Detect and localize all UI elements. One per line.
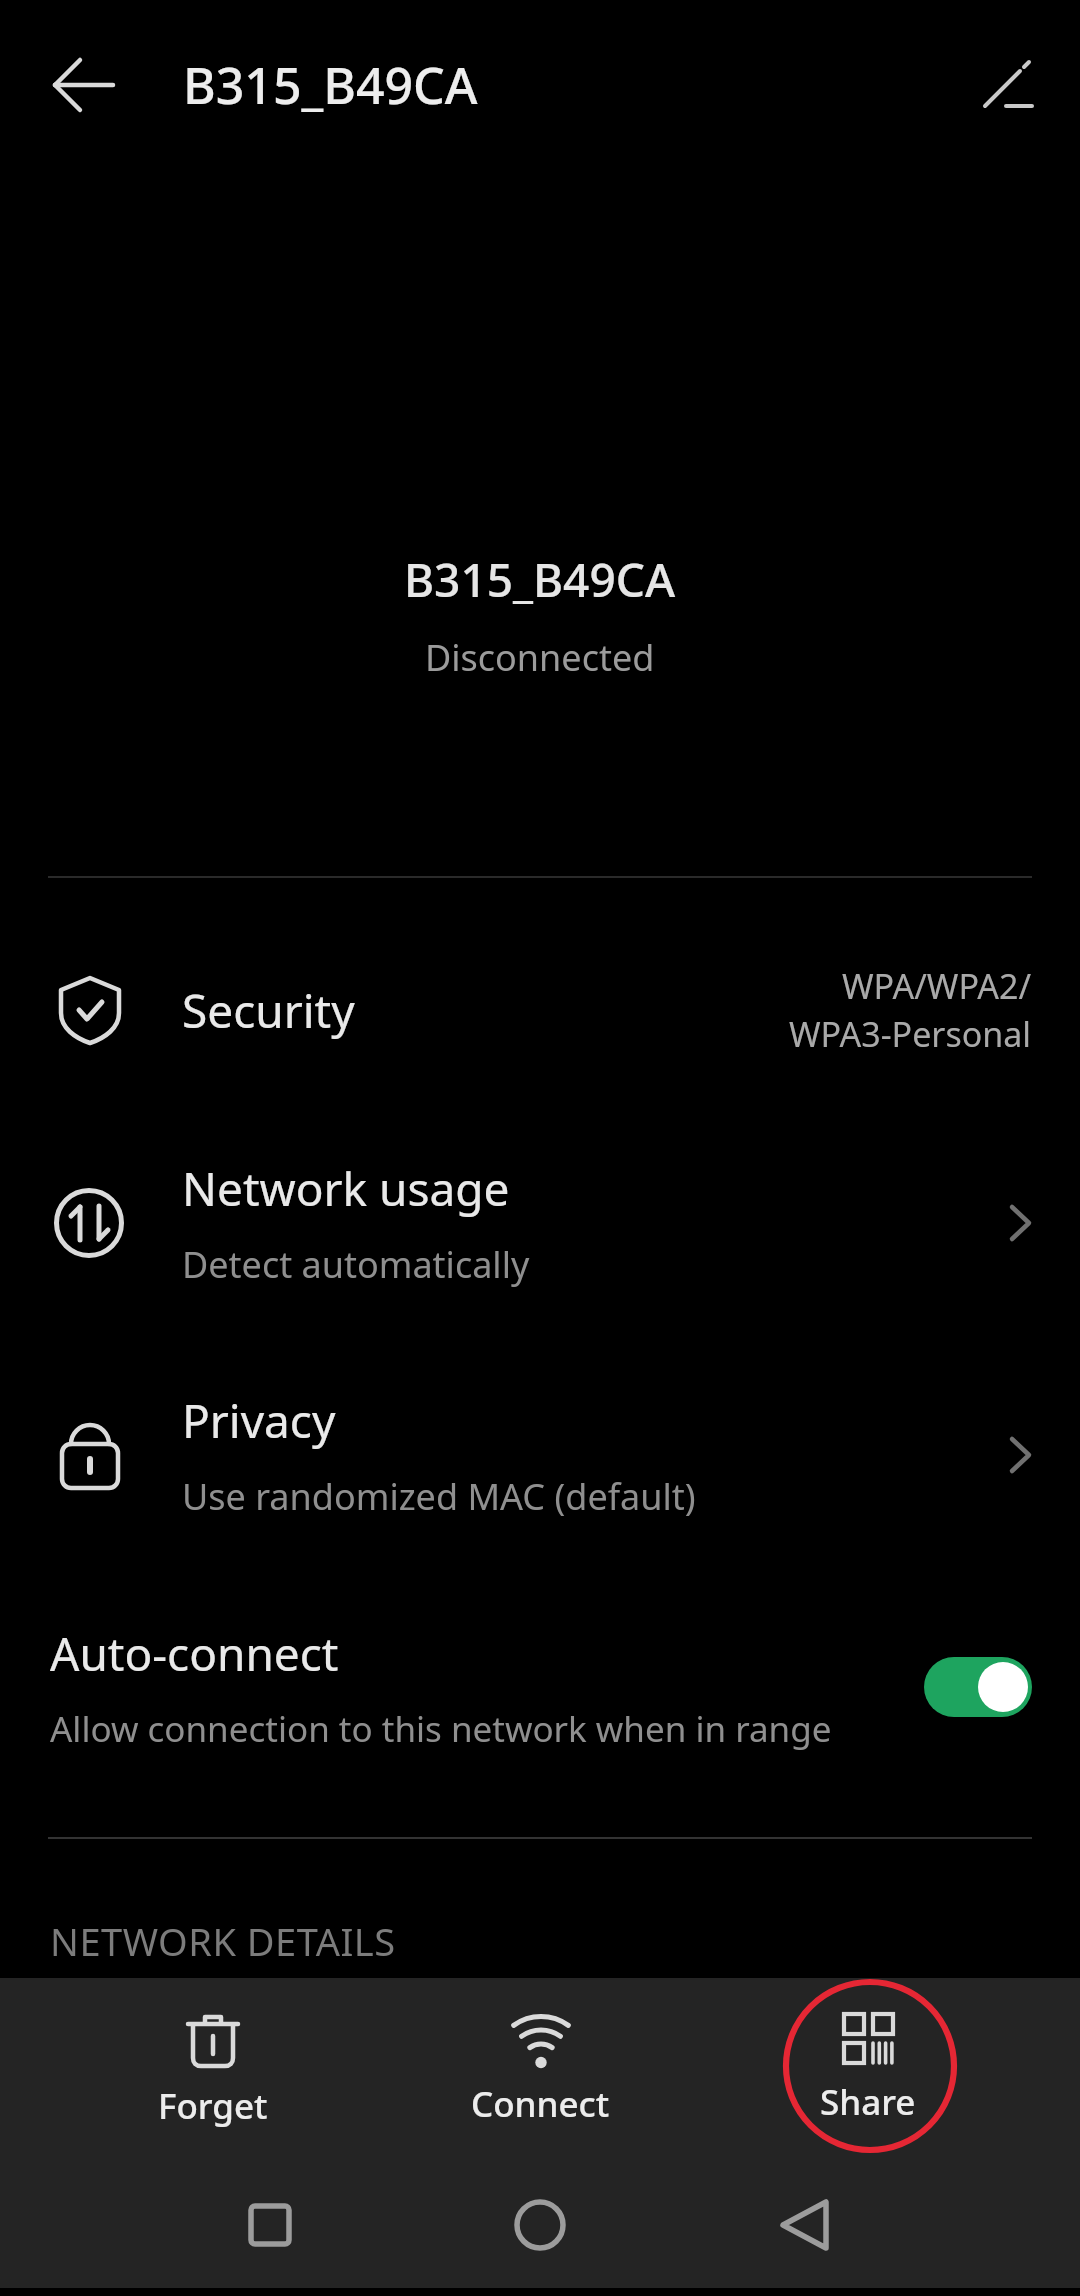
staticText: Disconnected xyxy=(425,633,655,682)
staticText: WPA/WPA2/ xyxy=(842,963,1032,1009)
staticText: Network usage xyxy=(182,1157,510,1220)
button[interactable] xyxy=(190,2180,350,2270)
staticText: Detect automatically xyxy=(182,1240,530,1289)
button[interactable] xyxy=(725,2180,885,2270)
button[interactable]: Forget xyxy=(103,1996,323,2132)
staticText: Use randomized MAC (default) xyxy=(182,1472,696,1521)
staticText: NETWORK DETAILS xyxy=(50,1915,396,1965)
staticText: Connect xyxy=(471,2080,610,2128)
staticText: Share xyxy=(820,2078,916,2126)
staticText: Privacy xyxy=(182,1389,336,1452)
button[interactable]: Auto-connect xyxy=(0,1607,1080,1767)
staticText: Allow connection to this network when in… xyxy=(50,1705,832,1753)
staticText: Security xyxy=(182,979,355,1042)
staticText: WPA3-Personal xyxy=(789,1011,1032,1057)
button[interactable] xyxy=(460,2180,620,2270)
button[interactable] xyxy=(40,41,128,129)
button[interactable]: Privacy xyxy=(0,1375,1080,1535)
button[interactable]: Share xyxy=(758,1996,978,2132)
button[interactable]: Security xyxy=(0,943,1080,1077)
button[interactable]: Network usage xyxy=(0,1143,1080,1303)
staticText: Auto-connect xyxy=(50,1622,339,1685)
staticText: B315_B49CA xyxy=(183,51,478,119)
button[interactable] xyxy=(963,41,1051,129)
button[interactable]: Connect xyxy=(430,1996,650,2132)
staticText: B315_B49CA xyxy=(404,548,676,611)
staticText: Forget xyxy=(158,2082,268,2130)
button[interactable] xyxy=(924,1657,1032,1717)
